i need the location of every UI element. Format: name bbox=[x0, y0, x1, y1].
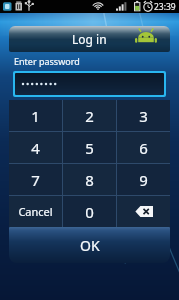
staticText: 6 bbox=[139, 138, 148, 158]
button[interactable]: 0 bbox=[63, 196, 116, 227]
staticText: Enter password bbox=[14, 55, 80, 67]
button[interactable]: 2 bbox=[63, 100, 116, 131]
staticText: Log in bbox=[72, 31, 107, 47]
button[interactable]: 1 bbox=[9, 100, 62, 131]
button[interactable]: 9 bbox=[117, 164, 170, 195]
staticText: 3 bbox=[139, 106, 148, 126]
staticText: 8 bbox=[85, 170, 94, 190]
button[interactable]: OK bbox=[9, 227, 170, 263]
staticText: Cancel bbox=[18, 204, 53, 219]
staticText: 1 bbox=[31, 106, 40, 126]
button[interactable]: 7 bbox=[9, 164, 62, 195]
staticText: 2 bbox=[85, 106, 94, 126]
button[interactable]: Cancel bbox=[9, 196, 62, 227]
button[interactable]: 6 bbox=[117, 132, 170, 163]
staticText: 9 bbox=[139, 170, 148, 190]
staticText: 0 bbox=[85, 202, 94, 222]
staticText: OK bbox=[80, 236, 100, 255]
button[interactable] bbox=[15, 73, 164, 95]
staticText: 4 bbox=[31, 138, 40, 158]
button[interactable]: 3 bbox=[117, 100, 170, 131]
staticText: 23:39 bbox=[154, 1, 176, 13]
button[interactable]: 4 bbox=[9, 132, 62, 163]
button[interactable]: 5 bbox=[63, 132, 116, 163]
button[interactable]: 8 bbox=[63, 164, 116, 195]
button[interactable]: Delete bbox=[117, 196, 170, 227]
staticText: 7 bbox=[31, 170, 40, 190]
staticText: 5 bbox=[85, 138, 94, 158]
